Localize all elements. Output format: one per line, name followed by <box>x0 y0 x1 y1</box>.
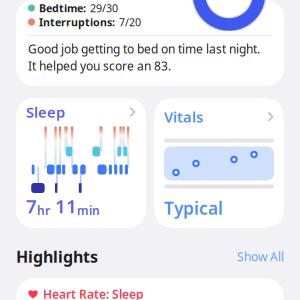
button[interactable]: Heart Rate: Sleep <box>16 278 284 300</box>
button[interactable]: Sleep <box>16 98 146 228</box>
button[interactable]: Show All <box>237 249 284 265</box>
button[interactable]: Vitals <box>154 98 284 228</box>
staticText: Typical <box>164 196 223 219</box>
staticText: min <box>77 202 100 218</box>
staticText: 7/20 <box>119 15 141 29</box>
staticText: Sleep <box>26 102 65 122</box>
staticText: 29/30 <box>90 1 118 15</box>
staticText: Bedtime: <box>39 1 86 15</box>
staticText: Heart Rate: Sleep <box>43 286 144 300</box>
staticText: It helped you score an 83. <box>28 58 171 74</box>
staticText: hr <box>37 202 50 218</box>
staticText: Vitals <box>164 107 203 126</box>
staticText: Good job getting to bed on time last nig… <box>28 41 260 57</box>
staticText: Show All <box>237 249 284 265</box>
staticText: Interruptions: <box>39 15 115 29</box>
staticText: Highlights <box>16 246 98 267</box>
staticText: 7 <box>26 194 37 218</box>
staticText: 11 <box>50 194 77 218</box>
